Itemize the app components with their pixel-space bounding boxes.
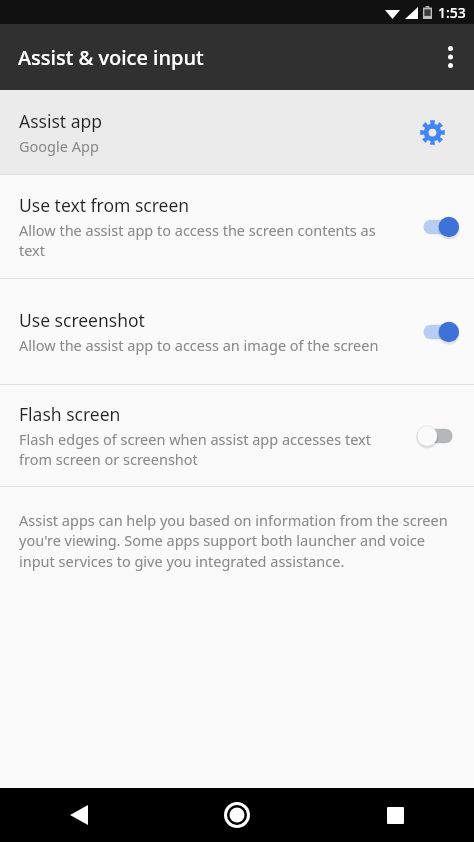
button[interactable]: Flash screen off xyxy=(402,385,474,486)
staticText: Use text from screen xyxy=(19,193,190,217)
button[interactable]: Flash screen xyxy=(0,385,474,486)
button[interactable]: Recent apps xyxy=(316,788,474,842)
staticText: Use screenshot xyxy=(19,308,145,332)
button[interactable]: Use text from screen on xyxy=(402,175,474,278)
staticText: Flash edges of screen when assist app ac… xyxy=(19,429,390,469)
button[interactable]: Assist app xyxy=(0,90,474,174)
staticText: Allow the assist app to access an image … xyxy=(19,335,379,355)
button[interactable]: More options xyxy=(426,33,474,81)
button[interactable]: Back xyxy=(0,788,158,842)
staticText: 1:53 xyxy=(438,3,466,22)
staticText: Google App xyxy=(19,136,99,156)
button[interactable]: Assist app settings xyxy=(402,102,462,162)
staticText: Flash screen xyxy=(19,402,121,426)
staticText: Allow the assist app to access the scree… xyxy=(19,220,390,260)
staticText: Assist apps can help you based on inform… xyxy=(19,510,458,572)
button[interactable]: Use screenshot on xyxy=(402,279,474,384)
button[interactable]: Use screenshot xyxy=(0,279,474,384)
button[interactable]: Home xyxy=(158,788,316,842)
button[interactable]: Use text from screen xyxy=(0,175,474,278)
staticText: Assist app xyxy=(19,109,103,133)
staticText: Assist & voice input xyxy=(18,44,204,71)
